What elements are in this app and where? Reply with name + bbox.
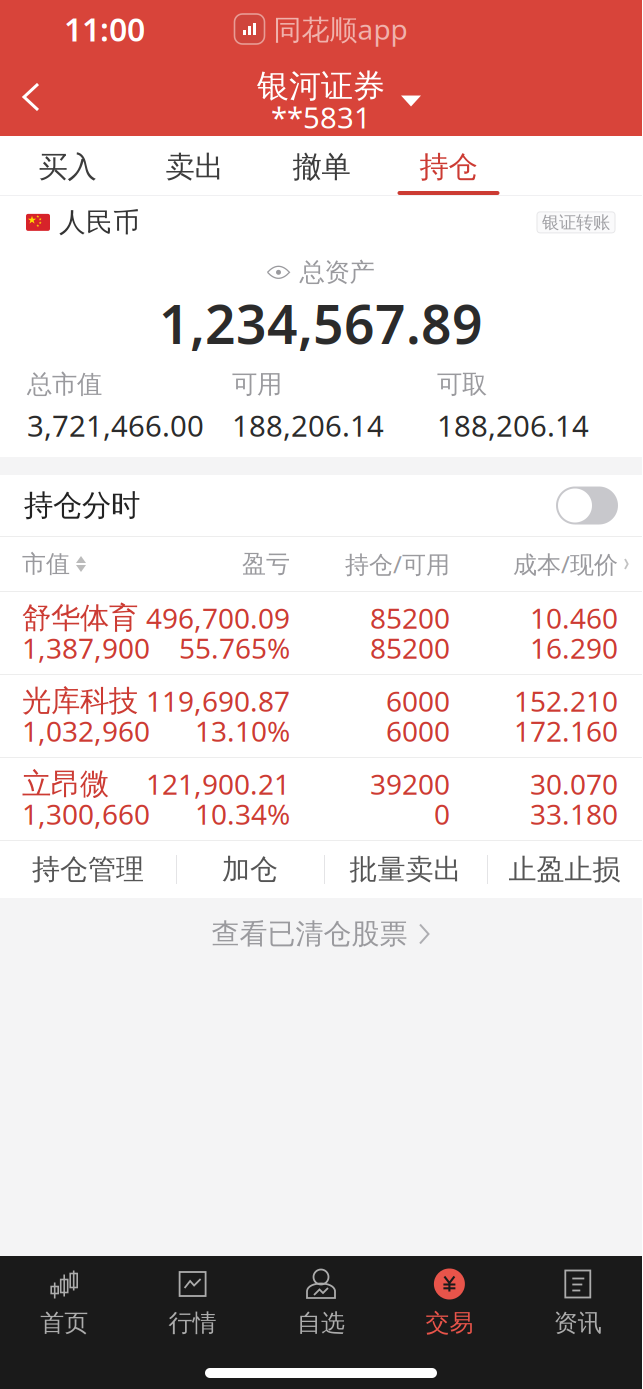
staticText: 39200 (370, 765, 450, 803)
staticText: **5831 (271, 97, 371, 136)
button[interactable]: 买入 (4, 136, 131, 195)
staticText: 查看已清仓股票 (211, 917, 407, 951)
staticText: 188,206.14 (232, 406, 384, 445)
staticText: 买入 (38, 149, 96, 185)
button[interactable]: 资讯 (514, 1268, 642, 1340)
staticText: 成本/现价 (513, 548, 618, 580)
button[interactable]: 止盈止损 (487, 841, 642, 898)
staticText: 6000 (386, 712, 450, 750)
button[interactable]: 查看已清仓股票 (0, 898, 642, 970)
staticText: 持仓分时 (24, 487, 140, 523)
button[interactable]: 银河证券 (221, 62, 421, 132)
staticText: 85200 (370, 629, 450, 667)
staticText: 立昂微 (22, 766, 109, 802)
button[interactable]: 撤单 (258, 136, 385, 195)
staticText: 行情 (169, 1308, 217, 1338)
staticText: 舒华体育 (22, 600, 138, 636)
button[interactable]: 舒华体育 (0, 592, 642, 674)
staticText: 人民币 (59, 206, 140, 239)
staticText: 13.10% (195, 712, 290, 750)
staticText: 30.070 (530, 765, 618, 803)
button[interactable]: 持仓管理 (0, 841, 176, 898)
staticText: 0 (434, 795, 450, 833)
button[interactable]: 自选 (257, 1268, 385, 1340)
staticText: 银河证券 (257, 66, 385, 106)
button[interactable]: 交易 (385, 1268, 514, 1340)
staticText: 止盈止损 (508, 852, 620, 887)
staticText: 1,234,567.89 (159, 288, 483, 359)
staticText: 光库科技 (22, 683, 138, 719)
staticText: 可用 (232, 369, 282, 400)
staticText: 盈亏 (242, 549, 290, 579)
staticText: 交易 (425, 1308, 473, 1338)
staticText: 同花顺app (273, 10, 407, 48)
staticText: 持仓 (419, 149, 477, 185)
staticText: 33.180 (530, 795, 618, 833)
staticText: 资讯 (554, 1308, 602, 1338)
staticText: 10.460 (530, 599, 618, 637)
staticText: 总市值 (27, 369, 102, 400)
staticText: 172.160 (514, 712, 618, 750)
staticText: 撤单 (292, 149, 350, 185)
staticText: 1,387,900 (22, 629, 150, 667)
staticText: 188,206.14 (437, 406, 589, 445)
staticText: 持仓/可用 (345, 548, 450, 580)
staticText: 加仓 (222, 852, 278, 887)
staticText: 批量卖出 (349, 852, 461, 887)
staticText: 11:00 (64, 8, 145, 50)
button[interactable]: 返回 (0, 64, 62, 130)
staticText: 首页 (40, 1308, 88, 1338)
staticText: 121,900.21 (146, 765, 290, 803)
staticText: 持仓管理 (32, 852, 144, 887)
staticText: 卖出 (165, 149, 223, 185)
staticText: 152.210 (514, 682, 618, 720)
staticText: 银证转账 (542, 212, 610, 233)
button[interactable]: 立昂微 (0, 758, 642, 840)
staticText: 可取 (437, 369, 487, 400)
button[interactable]: 首页 (0, 1268, 128, 1340)
staticText: 1,032,960 (22, 712, 150, 750)
staticText: 自选 (297, 1308, 345, 1338)
button[interactable]: 卖出 (131, 136, 258, 195)
staticText: 总资产 (299, 257, 374, 288)
button[interactable]: 加仓 (176, 841, 324, 898)
button[interactable]: 银证转账 (537, 212, 615, 233)
button[interactable]: 持仓 (385, 136, 512, 195)
staticText: 市值 (22, 549, 70, 579)
button[interactable]: 持仓分时开关 (556, 486, 618, 524)
button[interactable]: 行情 (128, 1268, 257, 1340)
staticText: 16.290 (530, 629, 618, 667)
staticText: 10.34% (195, 795, 290, 833)
staticText: 119,690.87 (146, 682, 290, 720)
staticText: 55.765% (179, 629, 290, 667)
staticText: 6000 (386, 682, 450, 720)
staticText: 3,721,466.00 (27, 406, 204, 445)
button[interactable]: 光库科技 (0, 675, 642, 757)
button[interactable]: 批量卖出 (324, 841, 487, 898)
staticText: 1,300,660 (22, 795, 150, 833)
staticText: 85200 (370, 599, 450, 637)
staticText: 496,700.09 (146, 599, 290, 637)
